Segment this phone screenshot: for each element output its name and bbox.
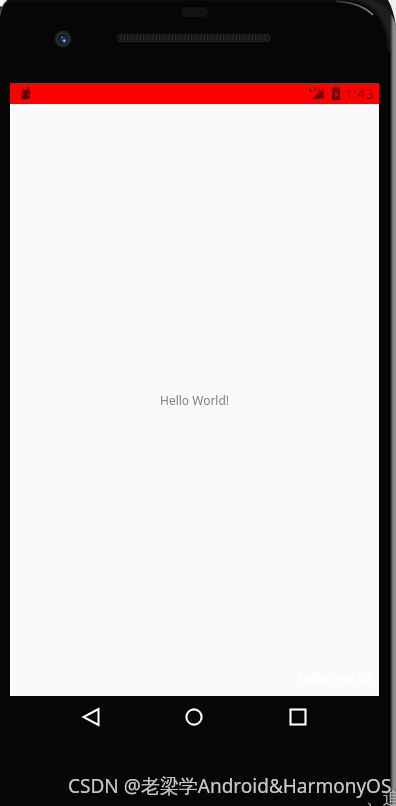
staticText: CSDN @老梁学Android&HarmonyOS — [68, 773, 392, 799]
staticText: 、追加 — [366, 788, 396, 806]
staticText: 1:43 — [345, 83, 374, 103]
button[interactable]: Home — [178, 701, 210, 733]
button[interactable]: Back — [75, 701, 107, 733]
staticText: Hello World! — [160, 392, 230, 408]
staticText: LTE — [309, 85, 321, 95]
button[interactable]: Recents — [282, 701, 314, 733]
